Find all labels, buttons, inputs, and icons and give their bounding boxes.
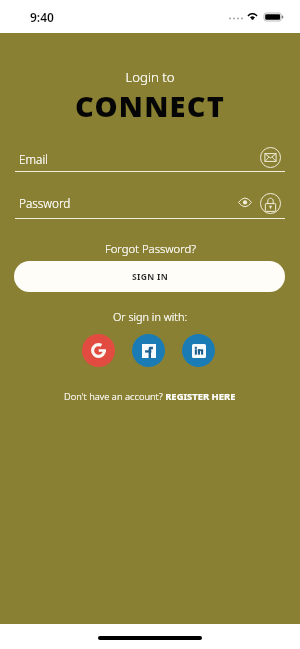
button[interactable]: Sign in with LinkedIn [182, 334, 215, 367]
button[interactable]: Don't have an account? REGISTER HERE [58, 388, 242, 405]
staticText: Forgot Password? [105, 241, 196, 256]
staticText: 9:40 [30, 9, 54, 25]
button[interactable]: Sign in with Facebook [132, 334, 165, 367]
staticText: Don't have an account? REGISTER HERE [64, 390, 236, 403]
staticText: Email [19, 151, 260, 167]
button[interactable]: Forgot Password? [97, 239, 204, 258]
button[interactable]: Sign in with Google [82, 334, 115, 367]
staticText: SIGN IN [132, 271, 168, 283]
button[interactable]: Password [260, 193, 281, 214]
button[interactable]: Show password [236, 195, 254, 213]
button[interactable]: SIGN IN [14, 261, 285, 292]
staticText: CONNECT [0, 86, 300, 125]
staticText: Or sign in with: [0, 309, 300, 324]
staticText: Login to [0, 68, 300, 86]
button[interactable]: Email [260, 147, 281, 168]
staticText: Password [19, 195, 236, 211]
